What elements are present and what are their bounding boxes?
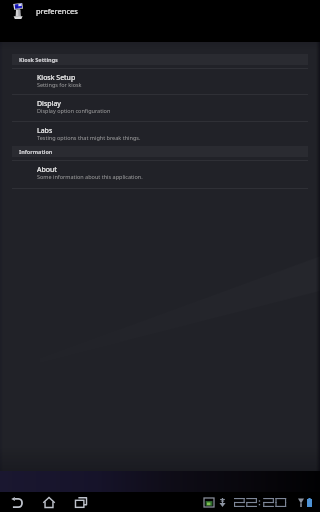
staticText: Display option configuration	[37, 107, 111, 114]
staticText: preferences	[36, 6, 78, 16]
staticText: Kiosk Settings	[19, 56, 58, 63]
button[interactable]: Home	[36, 492, 62, 512]
button[interactable]: Display	[0, 95, 320, 121]
button[interactable]: Recent apps	[68, 492, 94, 512]
button[interactable]: Back	[4, 492, 30, 512]
button[interactable]: Labs	[0, 122, 320, 146]
staticText: About	[37, 165, 57, 175]
staticText: Some information about this application.	[37, 173, 143, 180]
staticText: Display	[37, 99, 61, 109]
button[interactable]: About	[0, 161, 320, 188]
staticText: Labs	[37, 126, 53, 136]
staticText: Testing options that might break things.	[37, 134, 141, 141]
staticText: Settings for kiosk	[37, 81, 82, 88]
button[interactable]: Kiosk Setup	[0, 69, 320, 94]
staticText: Kiosk Setup	[37, 73, 76, 83]
staticText: Information	[19, 148, 53, 155]
